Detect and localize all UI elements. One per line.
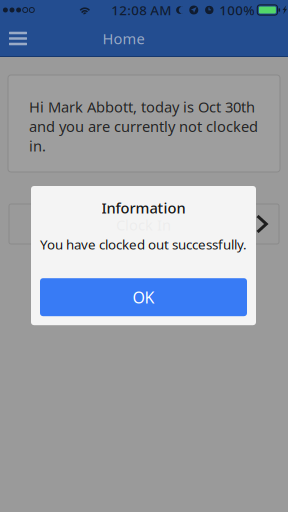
button[interactable]: OK (40, 278, 247, 316)
staticText: OK (132, 287, 154, 308)
staticText: Hi Mark Abbott, today is Oct 30th and yo… (29, 97, 258, 155)
staticText: 100% (219, 1, 254, 19)
staticText: 12:08 AM (111, 1, 171, 19)
staticText: You have clocked out successfully. (40, 235, 247, 253)
button[interactable]: Menu (0, 20, 36, 57)
button[interactable]: Clock In (0, 204, 288, 244)
staticText: Home (102, 29, 144, 48)
staticText: Information (101, 198, 185, 217)
